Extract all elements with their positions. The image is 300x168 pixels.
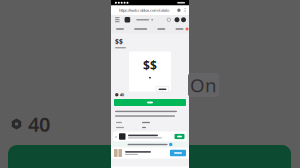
button[interactable] — [114, 99, 186, 106]
button[interactable] — [111, 147, 189, 158]
staticText: On — [190, 73, 217, 97]
staticText: $$ — [143, 57, 157, 73]
button[interactable]: x — [113, 131, 187, 141]
button[interactable]: Recent apps — [166, 166, 180, 168]
button[interactable]: Home — [143, 166, 157, 168]
staticText: https://web.roblox.com/catalo — [119, 8, 169, 13]
staticText: x — [115, 134, 117, 139]
staticText: $$ — [115, 37, 123, 45]
button[interactable]: On — [188, 73, 219, 97]
staticText: 40 — [120, 92, 124, 97]
button[interactable] — [156, 87, 169, 92]
staticText: 40 — [28, 111, 50, 137]
button[interactable]: Back — [120, 166, 134, 168]
